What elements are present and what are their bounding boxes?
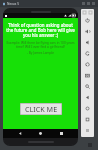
- button[interactable]: Home: [81, 103, 94, 114]
- button[interactable]: Zoom: [81, 81, 94, 92]
- staticText: CLICK ME: [25, 104, 58, 114]
- button[interactable]: Back: [17, 130, 24, 137]
- button[interactable]: Volume down: [81, 37, 94, 48]
- button[interactable]: Overview: [81, 114, 94, 125]
- button[interactable]: Volume up: [81, 26, 94, 37]
- button[interactable]: Rotate left: [81, 48, 94, 59]
- staticText: Think of question asking about the futur…: [6, 22, 75, 39]
- button[interactable]: CLICK ME: [20, 103, 62, 115]
- button[interactable]: More: [81, 125, 94, 136]
- button[interactable]: Toolbar control: [83, 11, 86, 14]
- staticText: Nexus 5: [7, 2, 19, 6]
- button[interactable]: Screenshot: [81, 70, 94, 81]
- staticText: - By James Lample: [3, 51, 78, 55]
- staticText: Example: Will there be flying cars in 10…: [6, 41, 75, 49]
- button[interactable]: Back: [81, 92, 94, 103]
- button[interactable]: Power: [81, 15, 94, 26]
- button[interactable]: Recent apps: [58, 130, 65, 137]
- button[interactable]: Toolbar control: [89, 11, 92, 14]
- button[interactable]: Home: [37, 130, 44, 137]
- button[interactable]: Rotate right: [81, 59, 94, 70]
